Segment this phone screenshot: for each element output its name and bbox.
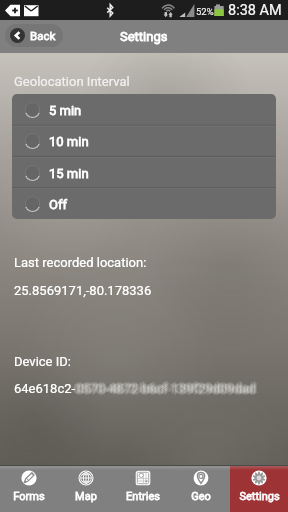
staticText: 64e618c2- <box>14 381 76 396</box>
staticText: 0570-4872-b6cf-139f29d09dad <box>76 383 256 398</box>
button[interactable]: Entries <box>114 465 172 512</box>
staticText: 15 min <box>49 166 89 181</box>
staticText: 0570-4872-b6cf-139f29d09dad <box>76 381 256 396</box>
staticText: 52% <box>196 6 214 17</box>
button[interactable]: Back <box>5 24 63 47</box>
button[interactable]: Settings <box>230 465 288 512</box>
staticText: 25.8569171,-80.178336 <box>14 283 152 298</box>
staticText: 0570-4872-b6cf-139f29d09dad <box>73 381 253 396</box>
staticText: 10 min <box>49 134 89 149</box>
staticText: Geo <box>191 490 211 503</box>
staticText: Device ID: <box>14 354 71 369</box>
staticText: 0570-4872-b6cf-139f29d09dad <box>76 379 256 394</box>
button[interactable]: Off <box>12 188 276 219</box>
staticText: 0570-4872-b6cf-139f29d09dad <box>74 382 254 397</box>
staticText: 0570-4872-b6cf-139f29d09dad <box>77 382 257 397</box>
staticText: 8:38 AM <box>228 2 282 19</box>
staticText: Settings <box>120 29 168 44</box>
staticText: 0570-4872-b6cf-139f29d09dad <box>78 381 258 396</box>
staticText: Entries <box>126 490 160 503</box>
button[interactable]: 10 min <box>12 125 276 156</box>
button[interactable]: Geo <box>172 465 230 512</box>
staticText: Last recorded location: <box>14 255 147 270</box>
staticText: Off <box>49 197 67 212</box>
button[interactable]: Map <box>57 465 114 512</box>
staticText: Forms <box>13 490 45 503</box>
staticText: 0570-4872-b6cf-139f29d09dad <box>77 380 257 395</box>
staticText: Settings <box>239 490 280 503</box>
staticText: Back <box>30 29 56 42</box>
staticText: Map <box>75 490 97 503</box>
button[interactable]: Forms <box>0 465 57 512</box>
button[interactable]: 15 min <box>12 157 276 188</box>
button[interactable]: 5 min <box>12 94 276 125</box>
staticText: 0570-4872-b6cf-139f29d09dad <box>74 380 254 395</box>
staticText: 5 min <box>49 103 82 118</box>
staticText: Geolocation Interval <box>14 74 130 89</box>
